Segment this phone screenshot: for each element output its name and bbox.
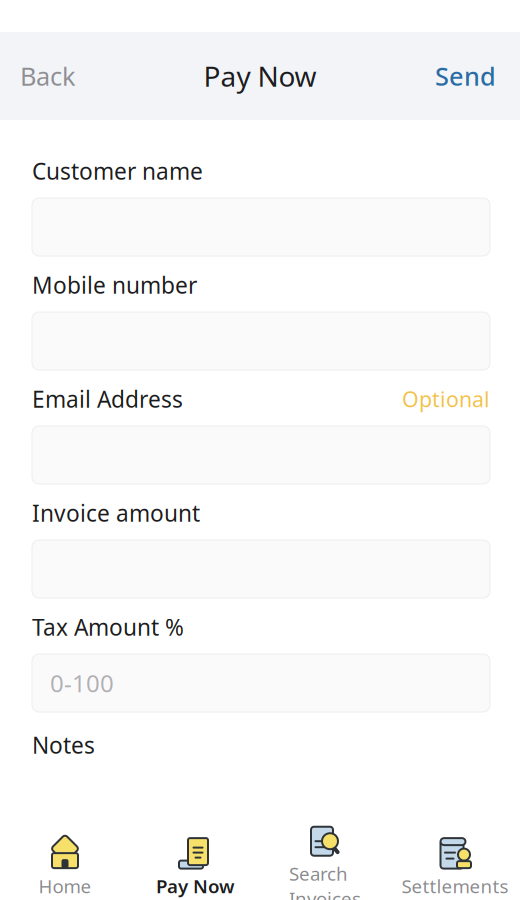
staticText: Pay Now [156,874,234,898]
staticText: Email Address [32,384,183,414]
staticText: Notes [32,730,95,760]
staticText: Invoice amount [32,498,200,528]
button[interactable]: Back [0,54,96,98]
staticText: Home [38,874,91,898]
button[interactable]: Pay Now [130,836,260,900]
button[interactable]: Settlements [390,836,520,900]
staticText: Search Invoices [289,861,361,900]
staticText: Optional [402,385,490,413]
staticText: Tax Amount % [32,612,184,642]
button[interactable]: Home [0,836,130,900]
staticText: 0-100 [50,667,114,699]
button[interactable]: 0-100 [32,654,490,712]
staticText: Back [20,59,76,93]
button[interactable]: Send [411,54,520,98]
button[interactable]: Search Invoices [260,836,390,900]
staticText: Settlements [401,874,508,898]
staticText: Customer name [32,156,203,186]
staticText: Send [435,59,496,93]
staticText: Mobile number [32,270,197,300]
staticText: Pay Now [203,57,316,95]
